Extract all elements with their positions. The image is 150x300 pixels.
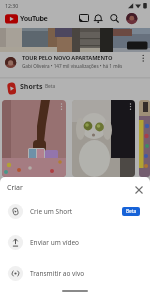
- staticText: 11:45: [130, 44, 142, 50]
- button[interactable]: Transmitir ao vivo: [0, 258, 150, 289]
- button[interactable]: [75, 11, 92, 28]
- button[interactable]: [130, 181, 148, 199]
- staticText: Enviar um vídeo: [30, 238, 79, 247]
- button[interactable]: [108, 11, 125, 28]
- staticText: Criar: [7, 183, 23, 193]
- staticText: Shorts: [20, 82, 43, 92]
- staticText: Beta: [45, 83, 56, 90]
- button[interactable]: [0, 28, 150, 77]
- staticText: YouTube: [20, 13, 48, 23]
- button[interactable]: [92, 11, 109, 28]
- button[interactable]: [72, 100, 135, 177]
- button[interactable]: Enviar um vídeo: [0, 227, 150, 258]
- staticText: TOUR PELO NOVO APARTAMENTO: [22, 54, 113, 62]
- staticText: Transmitir ao vivo: [30, 269, 85, 278]
- staticText: 12:30: [5, 2, 19, 9]
- button[interactable]: [2, 100, 66, 177]
- button[interactable]: Crie um Short: [0, 196, 150, 227]
- staticText: Gabi Oliveira • 147 mil visualizações • …: [22, 63, 123, 69]
- staticText: Crie um Short: [30, 207, 73, 216]
- staticText: Beta: [126, 208, 137, 215]
- button[interactable]: [125, 11, 140, 28]
